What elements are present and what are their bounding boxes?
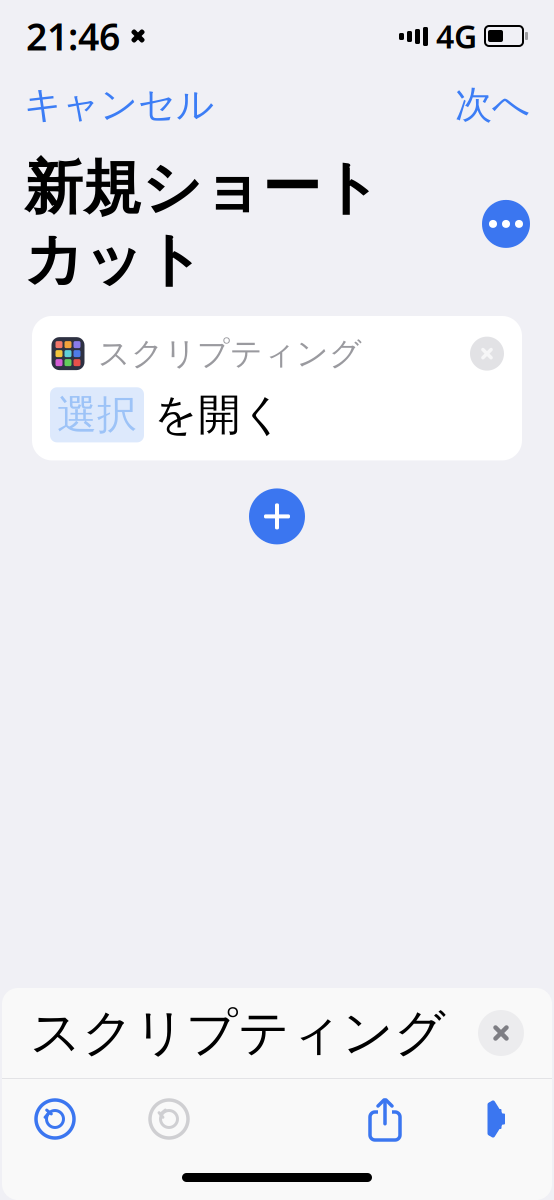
button[interactable]: 共有: [350, 1089, 420, 1149]
button[interactable]: 詳細: [482, 200, 530, 248]
staticText: 新規ショートカット: [24, 152, 381, 296]
button[interactable]: キャンセル: [24, 76, 214, 134]
button[interactable]: やり直す: [134, 1089, 204, 1149]
button[interactable]: 次へ: [455, 76, 530, 134]
staticText: 選択: [57, 390, 137, 439]
staticText: 21:46: [26, 11, 120, 61]
button[interactable]: 取り消す: [20, 1089, 90, 1149]
staticText: キャンセル: [24, 82, 214, 128]
staticText: スクリプティング: [98, 334, 362, 373]
button[interactable]: 実行: [464, 1089, 534, 1149]
button[interactable]: アクションを追加: [249, 488, 305, 544]
staticText: を開く: [154, 389, 285, 441]
staticText: 4G: [436, 15, 477, 57]
staticText: スクリプティング: [30, 1002, 446, 1064]
button[interactable]: スクリプティング: [32, 316, 522, 460]
staticText: 次へ: [455, 82, 530, 128]
button[interactable]: 消去: [478, 1010, 524, 1056]
